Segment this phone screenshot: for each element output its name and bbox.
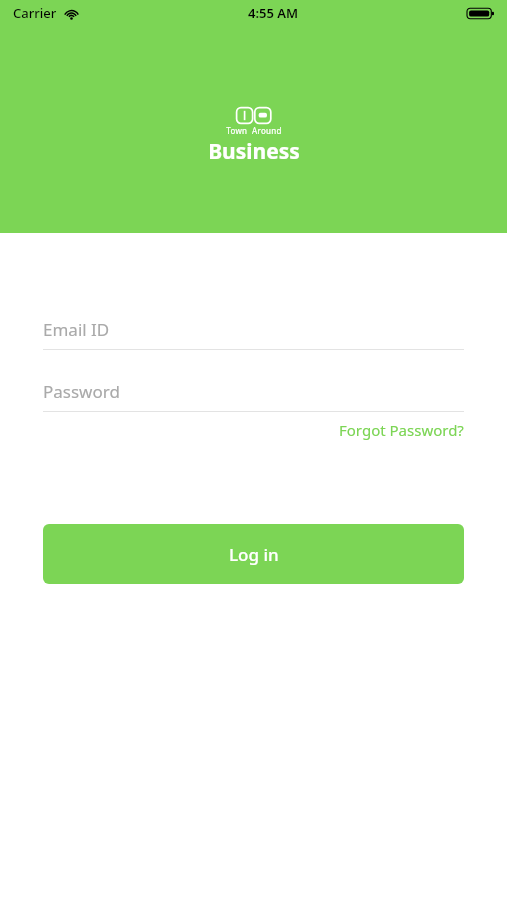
staticText: Town Around	[226, 125, 282, 136]
staticText: Business	[208, 137, 300, 166]
staticText: 4:55 AM	[248, 4, 299, 22]
staticText: Password	[43, 380, 120, 403]
button[interactable]: Forgot Password?	[43, 420, 464, 440]
other: Battery full	[467, 7, 494, 20]
button[interactable]: Email ID	[43, 318, 464, 350]
button[interactable]: Password	[43, 380, 464, 412]
other: Wi-Fi	[63, 7, 80, 20]
staticText: Log in	[229, 543, 279, 566]
staticText: Email ID	[43, 318, 110, 341]
staticText: Forgot Password?	[339, 420, 464, 440]
staticText: Carrier	[13, 4, 57, 22]
button[interactable]: Log in	[43, 524, 464, 584]
